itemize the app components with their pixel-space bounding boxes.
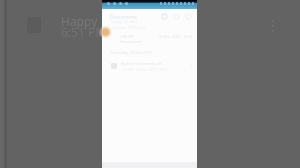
staticText: Today, 15 Mar [110,19,138,25]
button[interactable]: Sort [172,12,181,21]
button[interactable]: More options [272,20,274,32]
button[interactable]: Search [160,12,169,21]
staticText: Yesterday, 14 Mar 2021 [110,50,153,55]
button[interactable]: Report document.pdf [111,60,191,72]
staticText: Downloads [120,39,142,45]
staticText: Documents [110,14,137,21]
button[interactable]: Invoice_0315.pdf [102,24,197,46]
staticText: 6:51 PM [61,24,107,40]
staticText: Report document.pdf [121,61,162,66]
staticText: 1.2 MB 14 Mar 2021, 9:10 [121,67,167,72]
staticText: Invoice_0315.pdf [112,25,146,31]
staticText: Happy [61,13,98,29]
staticText: 340 KB [120,34,134,40]
staticText: 15 Mar 2021, 6:44 [157,34,192,40]
button[interactable]: More [184,12,193,21]
